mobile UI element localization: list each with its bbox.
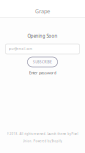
staticText: © 2018. All rights reserved. Launch them…: [6, 132, 78, 136]
staticText: Grape: [35, 7, 50, 15]
button[interactable]: SUBSCRIBE: [27, 57, 57, 67]
staticText: Enter password: [29, 70, 56, 75]
button[interactable]: Enter password: [29, 70, 56, 75]
button[interactable]: your@email.com: [0, 44, 85, 54]
button[interactable]: Grape: [0, 0, 85, 17]
staticText: your@email.com: [8, 47, 32, 51]
staticText: Union. Powered by Shopify.: [22, 139, 62, 143]
staticText: SUBSCRIBE: [33, 60, 52, 64]
staticText: Opening Soon: [27, 33, 57, 39]
